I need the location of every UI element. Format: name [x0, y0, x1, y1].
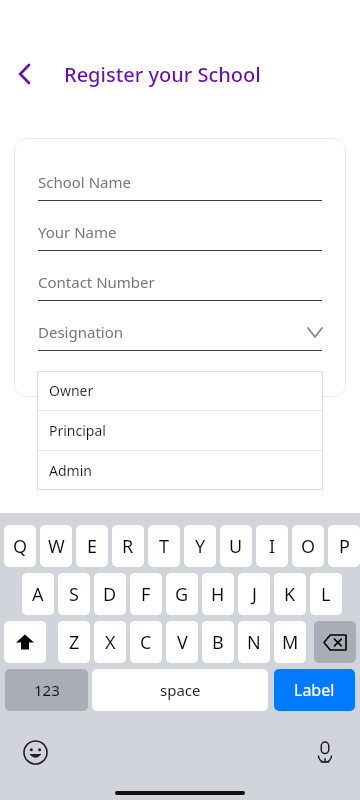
button[interactable]: Q [4, 525, 36, 567]
staticText: A [32, 582, 44, 607]
staticText: J [252, 582, 257, 607]
button[interactable]: X [94, 621, 126, 663]
button[interactable]: G [166, 573, 198, 615]
button[interactable]: Voice input [308, 735, 342, 769]
staticText: I [269, 534, 276, 559]
button[interactable]: Principal [37, 411, 323, 451]
button[interactable]: O [292, 525, 324, 567]
button[interactable]: Back [8, 58, 40, 90]
button[interactable]: H [202, 573, 234, 615]
staticText: Label [294, 679, 335, 701]
button[interactable]: 123 [5, 669, 88, 711]
staticText: Designation [38, 322, 308, 342]
button[interactable]: Shift [4, 621, 46, 663]
button[interactable]: Backspace [314, 621, 356, 663]
button[interactable]: V [166, 621, 198, 663]
staticText: C [140, 630, 152, 655]
staticText: Register your School [64, 61, 261, 88]
staticText: R [122, 534, 134, 559]
button[interactable]: R [112, 525, 144, 567]
button[interactable]: I [256, 525, 288, 567]
button[interactable]: W [40, 525, 72, 567]
button[interactable]: P [328, 525, 360, 567]
button[interactable]: C [130, 621, 162, 663]
staticText: T [159, 534, 170, 559]
staticText: L [321, 582, 331, 607]
button[interactable]: Your Name [38, 222, 322, 251]
staticText: 123 [34, 680, 60, 700]
button[interactable]: F [130, 573, 162, 615]
button[interactable]: Label [274, 669, 355, 711]
staticText: space [160, 680, 201, 700]
staticText: Contact Number [38, 272, 322, 292]
staticText: M [282, 630, 299, 655]
staticText: W [48, 534, 65, 559]
button[interactable]: Y [184, 525, 216, 567]
staticText: Owner [49, 381, 94, 400]
button[interactable]: Designation [38, 322, 322, 351]
button[interactable]: N [238, 621, 270, 663]
button[interactable]: T [148, 525, 180, 567]
staticText: H [211, 582, 225, 607]
staticText: B [212, 630, 224, 655]
button[interactable]: Contact Number [38, 272, 322, 301]
button[interactable]: J [238, 573, 270, 615]
button[interactable]: School Name [38, 172, 322, 201]
staticText: X [105, 630, 116, 655]
staticText: Z [69, 630, 80, 655]
button[interactable]: Z [58, 621, 90, 663]
staticText: G [175, 582, 189, 607]
button[interactable]: M [274, 621, 306, 663]
button[interactable]: A [22, 573, 54, 615]
button[interactable]: Emoji [18, 735, 52, 769]
staticText: Q [13, 534, 28, 559]
button[interactable]: Owner [37, 371, 323, 411]
staticText: Admin [49, 461, 92, 480]
staticText: S [69, 582, 79, 607]
staticText: K [284, 582, 296, 607]
staticText: E [87, 534, 98, 559]
button[interactable]: S [58, 573, 90, 615]
button[interactable]: Admin [37, 451, 323, 490]
staticText: F [141, 582, 151, 607]
button[interactable]: L [310, 573, 342, 615]
button[interactable]: space [92, 669, 268, 711]
staticText: N [247, 630, 261, 655]
staticText: U [229, 534, 243, 559]
button[interactable]: U [220, 525, 252, 567]
button[interactable]: D [94, 573, 126, 615]
staticText: Principal [49, 421, 106, 440]
button[interactable]: E [76, 525, 108, 567]
button[interactable]: B [202, 621, 234, 663]
staticText: Y [195, 534, 206, 559]
staticText: V [177, 630, 188, 655]
staticText: D [103, 582, 117, 607]
staticText: O [301, 534, 316, 559]
button[interactable]: K [274, 573, 306, 615]
staticText: P [339, 534, 350, 559]
staticText: School Name [38, 172, 322, 192]
staticText: Your Name [38, 222, 322, 242]
